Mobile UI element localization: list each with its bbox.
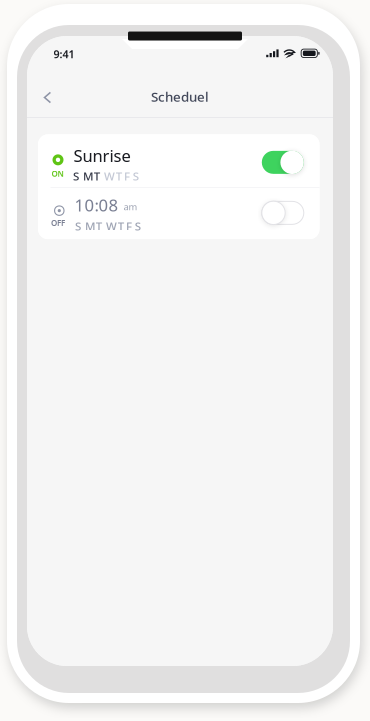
staticText: T — [96, 218, 102, 234]
staticText: M — [85, 218, 96, 234]
staticText: am — [123, 200, 137, 213]
staticText: F — [126, 218, 132, 234]
staticText: ON — [51, 168, 63, 179]
button[interactable]: ON — [38, 134, 319, 187]
staticText: OFF — [51, 217, 65, 228]
staticText: M — [83, 168, 94, 184]
staticText: S — [75, 218, 81, 234]
button[interactable]: Back — [33, 83, 61, 111]
staticText: S — [73, 168, 79, 184]
staticText: Scheduel — [151, 87, 209, 106]
staticText: S — [135, 218, 141, 234]
staticText: T — [94, 168, 100, 184]
button[interactable]: OFF — [38, 188, 319, 239]
staticText: T — [118, 218, 124, 234]
staticText: T — [116, 168, 122, 184]
staticText: S — [133, 168, 139, 184]
staticText: Sunrise — [73, 144, 130, 167]
staticText: W — [104, 168, 115, 184]
staticText: 10:08 — [74, 194, 118, 216]
staticText: W — [106, 218, 117, 234]
staticText: F — [124, 168, 130, 184]
staticText: 9:41 — [53, 47, 74, 61]
